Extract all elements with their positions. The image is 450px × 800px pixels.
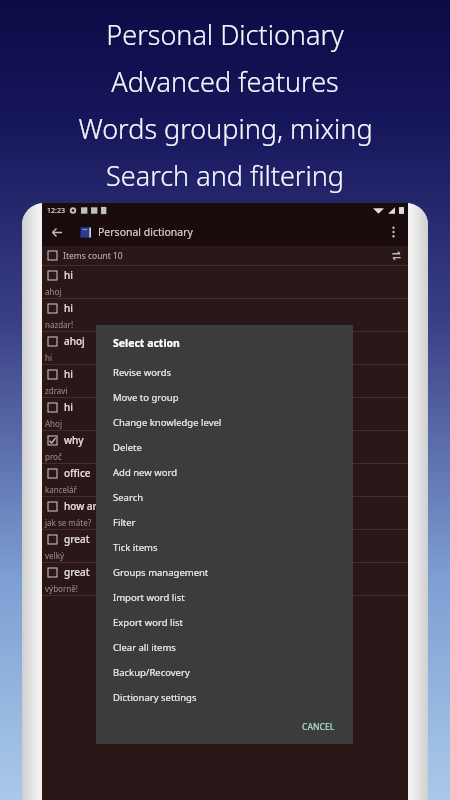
staticText: Items count 10 [63,250,123,262]
staticText: Clear all items [113,641,176,654]
button[interactable]: office [42,464,408,497]
button[interactable]: Filter [96,510,353,535]
button[interactable]: Delete [96,435,353,460]
staticText: Tick items [113,541,158,554]
staticText: Select action [113,336,180,350]
staticText: hi [64,367,73,381]
staticText: hi [45,352,53,363]
staticText: Move to group [113,391,179,404]
staticText: Ahoj [45,418,62,429]
button[interactable]: Export word list [96,610,353,635]
staticText: ahoj [64,334,85,348]
button[interactable]: why [42,431,408,464]
button[interactable]: Clear all items [96,635,353,660]
staticText: ahoj [45,286,62,297]
staticText: great [64,565,90,579]
staticText: Filter [113,516,136,529]
staticText: velký [45,550,64,561]
staticText: hi [64,400,73,414]
staticText: Revise words [113,366,172,379]
staticText: zdravi [45,385,68,396]
staticText: nazdar! [45,319,74,330]
staticText: Words grouping, mixing [78,110,373,147]
button[interactable]: CANCEL [296,717,341,737]
staticText: Groups management [113,566,209,579]
button[interactable]: Dictionary settings [96,685,353,710]
button[interactable]: Groups management [96,560,353,585]
button[interactable]: hi [42,299,408,332]
staticText: Delete [113,441,142,454]
staticText: Personal dictionary [98,225,193,239]
button[interactable]: Change knowledge level [96,410,353,435]
button[interactable]: great [42,530,408,563]
staticText: why [64,433,84,447]
staticText: Search and filtering [106,157,344,194]
staticText: kancelář [45,484,77,495]
staticText: Export word list [113,616,183,629]
button[interactable]: ahoj [42,332,408,365]
button[interactable]: Import word list [96,585,353,610]
button[interactable]: hi [42,266,408,299]
button[interactable]: Backup/Recovery [96,660,353,685]
staticText: hi [64,301,73,315]
button[interactable]: Add new word [96,460,353,485]
staticText: CANCEL [302,721,335,733]
staticText: hi [64,268,73,282]
staticText: Import word list [113,591,185,604]
staticText: Add new word [113,466,177,479]
staticText: proč [45,451,62,462]
staticText: Advanced features [111,63,339,100]
button[interactable]: Swap [386,246,406,265]
staticText: Search [113,491,144,504]
button[interactable]: More options [380,219,406,245]
staticText: office [64,466,91,480]
staticText: great [64,532,90,546]
button[interactable]: Move to group [96,385,353,410]
staticText: Personal Dictionary [106,16,344,53]
button[interactable]: Tick items [96,535,353,560]
staticText: Backup/Recovery [113,666,190,679]
button[interactable]: hi [42,365,408,398]
button[interactable]: Search [96,485,353,510]
button[interactable]: hi [42,398,408,431]
button[interactable]: great [42,563,408,596]
button[interactable]: Items count 10 [42,246,408,265]
staticText: Change knowledge level [113,416,222,429]
staticText: výborně! [45,583,78,594]
button[interactable]: Back [42,218,70,246]
staticText: how are you [64,499,123,513]
button[interactable]: Revise words [96,360,353,385]
staticText: 12:23 [47,206,65,216]
staticText: Dictionary settings [113,691,197,704]
staticText: jak se máte? [45,517,92,528]
button[interactable]: how are you [42,497,408,530]
